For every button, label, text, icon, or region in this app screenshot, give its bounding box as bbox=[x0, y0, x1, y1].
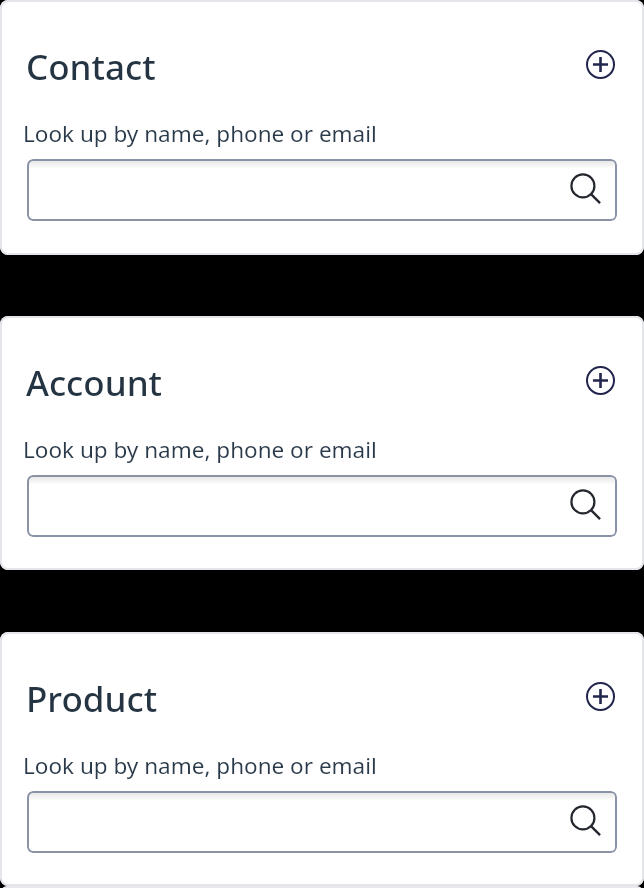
button[interactable] bbox=[586, 682, 615, 711]
button[interactable] bbox=[586, 366, 615, 395]
staticText: Look up by name, phone or email bbox=[23, 118, 377, 149]
staticText: Contact bbox=[26, 43, 156, 91]
staticText: Account bbox=[26, 359, 162, 407]
button[interactable] bbox=[27, 475, 617, 537]
button[interactable] bbox=[27, 791, 617, 853]
staticText: Product bbox=[26, 675, 158, 723]
staticText: Look up by name, phone or email bbox=[23, 750, 377, 781]
button[interactable] bbox=[27, 159, 617, 221]
staticText: Look up by name, phone or email bbox=[23, 434, 377, 465]
button[interactable] bbox=[586, 50, 615, 79]
